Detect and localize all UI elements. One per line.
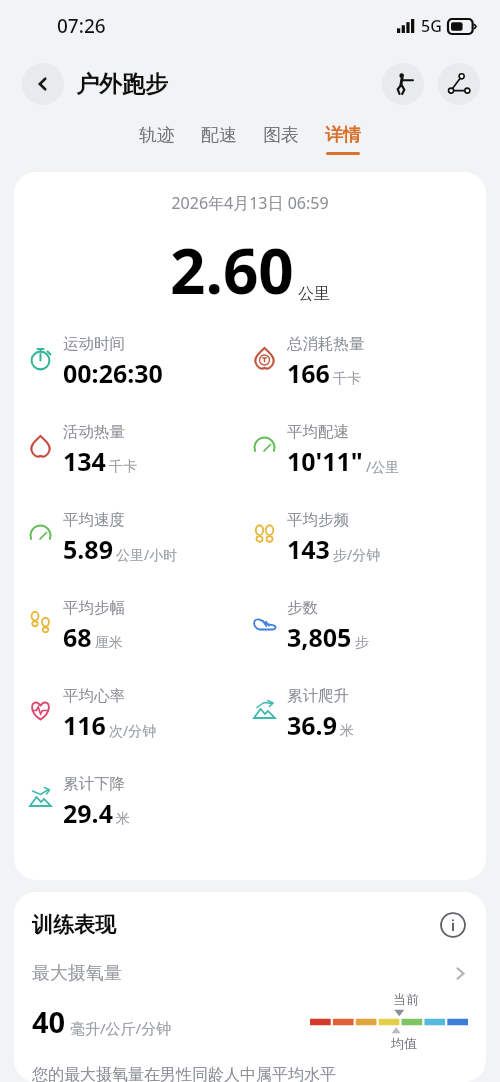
staticText: 134 [63, 444, 106, 478]
staticText: 训练表现 [32, 912, 116, 938]
button[interactable]: Training [382, 63, 424, 105]
staticText: 10'11" [287, 444, 363, 478]
staticText: 厘米 [95, 634, 123, 652]
staticText: 166 [287, 356, 330, 390]
button[interactable]: 步数 [252, 598, 486, 654]
staticText: 配速 [201, 124, 237, 147]
staticText: 千卡 [333, 370, 361, 388]
staticText: 公里/小时 [116, 545, 178, 564]
staticText: 36.9 [287, 708, 337, 742]
staticText: 米 [116, 810, 130, 828]
staticText: 公里 [298, 284, 330, 304]
staticText: 40 [32, 1002, 66, 1041]
button[interactable]: Share [438, 63, 480, 105]
staticText: 143 [287, 532, 330, 566]
staticText: 步 [355, 634, 369, 652]
staticText: 累计爬升 [287, 686, 349, 706]
button[interactable]: 最大摄氧量 [32, 962, 468, 985]
staticText: 平均心率 [63, 686, 125, 706]
staticText: 总消耗热量 [287, 334, 365, 354]
staticText: 平均速度 [63, 510, 125, 530]
staticText: 68 [63, 620, 92, 654]
button[interactable]: 累计下降 [28, 774, 250, 830]
staticText: 步数 [287, 598, 318, 618]
button[interactable]: 累计爬升 [252, 686, 486, 742]
button[interactable]: 配速 [201, 124, 237, 155]
button[interactable]: 轨迹 [139, 124, 175, 155]
staticText: 活动热量 [63, 422, 125, 442]
button[interactable]: 平均步幅 [28, 598, 250, 654]
staticText: 2.60 [170, 228, 294, 312]
staticText: 116 [63, 708, 106, 742]
staticText: 均值 [391, 1035, 417, 1051]
staticText: 米 [340, 722, 354, 740]
button[interactable]: 详情 [325, 124, 361, 155]
staticText: 千卡 [109, 458, 137, 476]
button[interactable]: 平均配速 [252, 422, 486, 478]
staticText: 平均步幅 [63, 598, 125, 618]
staticText: 累计下降 [63, 774, 125, 794]
staticText: 毫升/公斤/分钟 [70, 1018, 172, 1038]
button[interactable]: 平均步频 [252, 510, 486, 566]
staticText: 29.4 [63, 796, 113, 830]
button[interactable]: Back [22, 63, 64, 105]
button[interactable]: 平均速度 [28, 510, 250, 566]
staticText: 最大摄氧量 [32, 962, 122, 985]
button[interactable]: 图表 [263, 124, 299, 155]
button[interactable]: 活动热量 [28, 422, 250, 478]
staticText: 您的最大摄氧量在男性同龄人中属平均水平 [32, 1065, 336, 1082]
staticText: 运动时间 [63, 334, 125, 354]
button[interactable]: 总消耗热量 [252, 334, 486, 390]
staticText: 轨迹 [139, 124, 175, 147]
staticText: 户外跑步 [76, 70, 168, 99]
staticText: 3,805 [287, 620, 352, 654]
staticText: 00:26:30 [63, 356, 163, 390]
staticText: 次/分钟 [109, 721, 157, 740]
button[interactable]: 平均心率 [28, 686, 250, 742]
staticText: 2026年4月13日 06:59 [14, 192, 486, 214]
staticText: 当前 [393, 991, 419, 1007]
staticText: 5.89 [63, 532, 113, 566]
staticText: 图表 [263, 124, 299, 147]
button[interactable]: Info [438, 910, 468, 940]
button[interactable]: 运动时间 [28, 334, 250, 390]
staticText: 平均步频 [287, 510, 349, 530]
staticText: 5G [421, 15, 442, 37]
staticText: 07:26 [57, 13, 106, 39]
staticText: 平均配速 [287, 422, 349, 442]
staticText: 步/分钟 [333, 545, 381, 564]
staticText: 详情 [325, 124, 361, 147]
staticText: /公里 [366, 457, 400, 476]
